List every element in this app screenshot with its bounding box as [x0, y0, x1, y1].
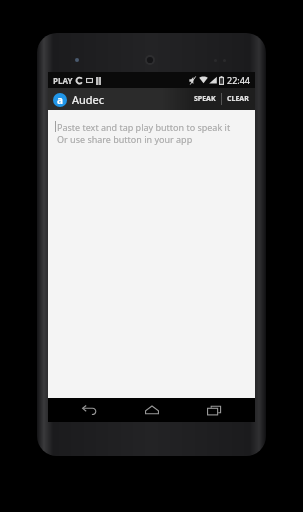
staticText: SPEAK [194, 94, 216, 104]
staticText: Or use share button in your app [57, 133, 193, 145]
button[interactable]: Paste text and tap play button to speak … [48, 110, 255, 398]
staticText: PLAY [53, 75, 73, 86]
button[interactable]: Back [67, 398, 111, 422]
staticText: 22:44 [227, 74, 251, 86]
staticText: CLEAR [227, 94, 249, 104]
button[interactable]: a [48, 92, 109, 107]
button[interactable]: Home [130, 398, 174, 422]
staticText: a [57, 93, 63, 107]
button[interactable]: SPEAK [189, 88, 221, 110]
staticText: Paste text and tap play button to speak … [57, 121, 231, 133]
button[interactable]: Recent apps [192, 398, 236, 422]
staticText: Audec [72, 92, 105, 107]
button[interactable]: CLEAR [222, 88, 255, 110]
